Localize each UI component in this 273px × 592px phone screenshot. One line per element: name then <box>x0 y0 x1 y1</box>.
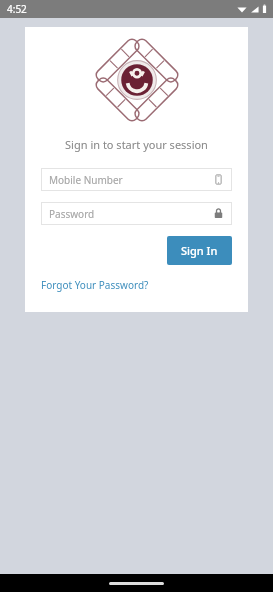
staticText: Sign in to start your session <box>65 137 208 152</box>
staticText: Password <box>49 207 213 221</box>
button[interactable]: Forgot Your Password? <box>41 276 149 294</box>
staticText: Forgot Your Password? <box>41 278 149 292</box>
button[interactable]: Sign In <box>167 236 232 265</box>
staticText: 4:52 <box>7 2 27 16</box>
other: Password <box>213 208 224 219</box>
staticText: Mobile Number <box>49 173 213 187</box>
button[interactable]: Mobile Number <box>41 168 232 191</box>
button[interactable]: Password <box>41 202 232 225</box>
staticText: Sign In <box>181 243 218 258</box>
other: Mobile number <box>213 174 224 185</box>
